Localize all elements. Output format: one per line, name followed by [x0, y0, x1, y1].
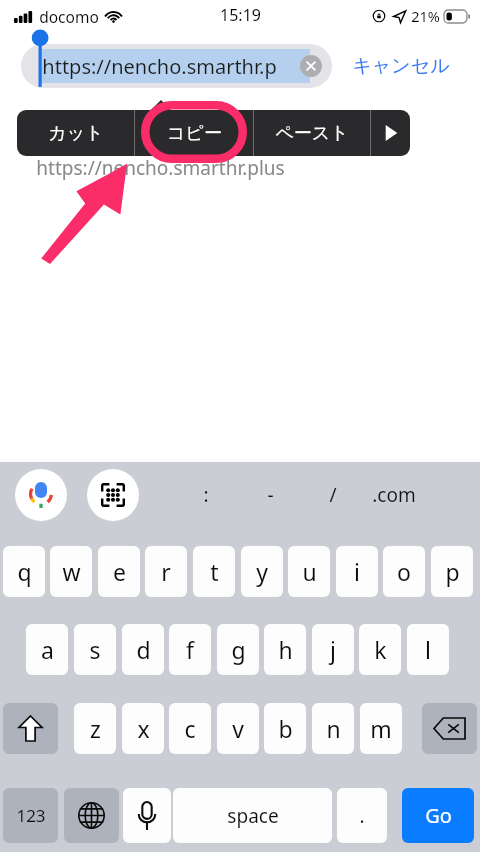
button[interactable]: o	[383, 546, 425, 597]
staticText: Go	[425, 802, 452, 829]
staticText: 21%	[411, 6, 440, 26]
button[interactable]: l	[407, 624, 449, 675]
button[interactable]: Go	[402, 788, 474, 843]
staticText: .com	[372, 482, 416, 508]
button[interactable]: m	[360, 703, 402, 754]
staticText: v	[232, 713, 244, 744]
button[interactable]: ペースト	[254, 110, 370, 156]
staticText: -	[267, 482, 274, 508]
button[interactable]: h	[264, 624, 306, 675]
button[interactable]: y	[241, 546, 283, 597]
button[interactable]: x	[122, 703, 164, 754]
button[interactable]: Voice search	[15, 469, 67, 521]
button[interactable]: s	[74, 624, 116, 675]
button[interactable]: t	[193, 546, 235, 597]
button[interactable]: .	[337, 788, 387, 843]
staticText: g	[231, 634, 246, 665]
staticText: w	[62, 556, 81, 587]
staticText: a	[41, 634, 54, 665]
button[interactable]: w	[50, 546, 92, 597]
staticText: r	[161, 556, 171, 587]
staticText: n	[326, 713, 341, 744]
button[interactable]: Shift	[3, 703, 58, 754]
staticText: u	[302, 556, 317, 587]
button[interactable]: g	[217, 624, 259, 675]
staticText: p	[445, 556, 460, 587]
staticText: space	[227, 803, 279, 829]
button[interactable]: d	[122, 624, 164, 675]
button[interactable]: a	[26, 624, 68, 675]
staticText: i	[354, 556, 360, 587]
staticText: k	[374, 634, 387, 665]
button[interactable]: :	[182, 471, 230, 519]
staticText: docomo	[39, 6, 99, 27]
staticText: c	[184, 713, 196, 744]
staticText: https://nencho.smarthr.plus	[36, 155, 285, 181]
staticText: q	[17, 556, 32, 587]
button[interactable]: e	[98, 546, 140, 597]
staticText: x	[137, 713, 150, 744]
staticText: キャンセル	[352, 54, 450, 78]
button[interactable]: b	[264, 703, 306, 754]
staticText: ペースト	[275, 122, 349, 145]
button[interactable]: u	[288, 546, 330, 597]
button[interactable]: q	[3, 546, 45, 597]
button[interactable]: Dictation	[123, 788, 171, 843]
staticText: カット	[48, 122, 104, 145]
staticText: :	[203, 482, 209, 508]
button[interactable]: Backspace	[422, 703, 477, 754]
button[interactable]: r	[145, 546, 187, 597]
button[interactable]: -	[246, 471, 294, 519]
button[interactable]: z	[74, 703, 116, 754]
button[interactable]: n	[312, 703, 354, 754]
staticText: 15:19	[220, 4, 261, 26]
button[interactable]: v	[217, 703, 259, 754]
button[interactable]: カット	[17, 110, 134, 156]
staticText: e	[113, 556, 126, 587]
staticText: m	[370, 713, 392, 744]
staticText: j	[330, 634, 336, 665]
button[interactable]: j	[312, 624, 354, 675]
button[interactable]: .com	[370, 471, 418, 519]
button[interactable]: コピー	[135, 110, 253, 156]
button[interactable]: キャンセル	[348, 50, 454, 82]
button[interactable]: More options	[371, 110, 410, 156]
button[interactable]: c	[169, 703, 211, 754]
button[interactable]: /	[309, 471, 357, 519]
staticText: .	[359, 803, 365, 829]
staticText: y	[256, 556, 268, 587]
button[interactable]: Scan code	[87, 469, 139, 521]
button[interactable]: Switch keyboard language	[64, 788, 119, 843]
button[interactable]: Clear text	[300, 55, 322, 77]
staticText: b	[278, 713, 293, 744]
button[interactable]: https://nencho.smarthr.p	[21, 44, 332, 88]
staticText: 123	[16, 804, 46, 827]
staticText: s	[89, 634, 101, 665]
button[interactable]: 123	[3, 788, 58, 843]
staticText: l	[425, 634, 431, 665]
staticText: https://nencho.smarthr.p	[42, 53, 277, 80]
staticText: h	[278, 634, 293, 665]
staticText: d	[136, 634, 151, 665]
button[interactable]: space	[173, 788, 332, 843]
button[interactable]: p	[431, 546, 473, 597]
staticText: o	[397, 556, 411, 587]
button[interactable]: i	[336, 546, 378, 597]
staticText: t	[210, 556, 219, 587]
staticText: z	[90, 713, 101, 744]
staticText: /	[329, 482, 337, 508]
staticText: コピー	[167, 122, 222, 145]
button[interactable]: k	[359, 624, 401, 675]
staticText: f	[186, 634, 194, 665]
button[interactable]: f	[169, 624, 211, 675]
